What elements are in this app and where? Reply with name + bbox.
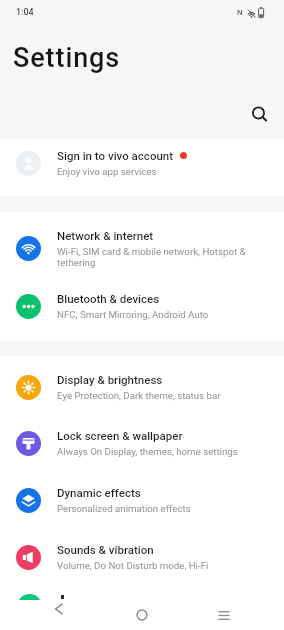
button[interactable]	[246, 101, 272, 127]
staticText: Network & internet	[57, 229, 154, 242]
staticText: Display & brightness	[57, 373, 163, 386]
staticText: N	[237, 8, 243, 17]
button[interactable]: Display & brightness	[0, 362, 284, 412]
button[interactable]: Sounds & vibration	[0, 532, 284, 582]
staticText: Dynamic effects	[57, 486, 141, 499]
staticText: Wi-Fi, SIM card & mobile network, Hotspo…	[57, 246, 246, 257]
button[interactable]: Lock screen & wallpaper	[0, 418, 284, 468]
staticText: Bluetooth & devices	[57, 292, 160, 305]
staticText: NFC, Smart Mirroring, Android Auto	[57, 309, 209, 320]
staticText: Always On Display, themes, home settings	[57, 446, 238, 457]
button[interactable]	[0, 600, 94, 630]
staticText: Settings	[13, 42, 121, 74]
button[interactable]: Dynamic effects	[0, 475, 284, 525]
button[interactable]	[189, 600, 284, 630]
staticText: 1:04	[16, 7, 34, 18]
staticText: tethering	[57, 257, 96, 268]
staticText: Eye Protection, Dark theme, status bar	[57, 390, 221, 401]
staticText: Volume, Do Not Disturb mode, Hi-Fi	[57, 560, 209, 571]
button[interactable]: Sign in to vivo account	[0, 138, 284, 188]
staticText: Sounds & vibration	[57, 543, 154, 556]
button[interactable]: Network & internet	[0, 212, 284, 284]
staticText: Personalized animation effects	[57, 503, 191, 514]
staticText: Sign in to vivo account	[57, 149, 174, 162]
button[interactable]: Bluetooth & devices	[0, 281, 284, 331]
staticText: Enjoy vivo app services	[57, 166, 157, 177]
button[interactable]	[94, 600, 189, 630]
staticText: Lock screen & wallpaper	[57, 429, 183, 442]
